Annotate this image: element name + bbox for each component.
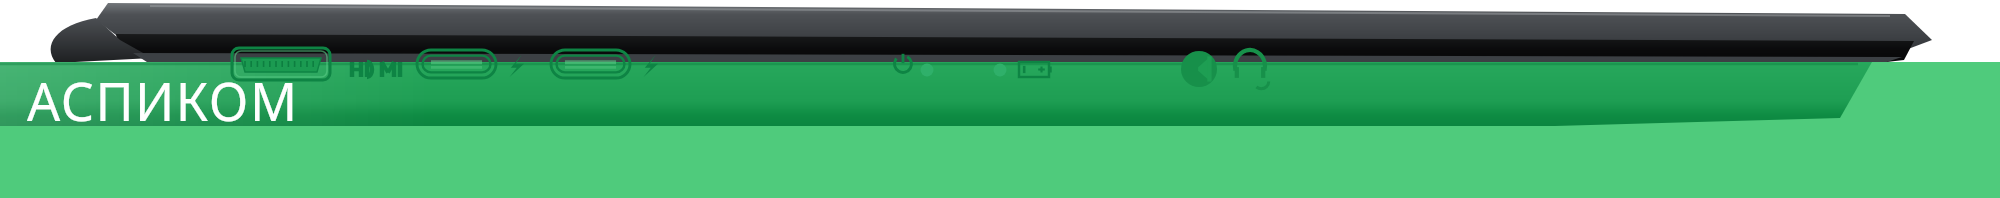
button[interactable]: ASPIKOM laptop banner xyxy=(0,0,2000,198)
